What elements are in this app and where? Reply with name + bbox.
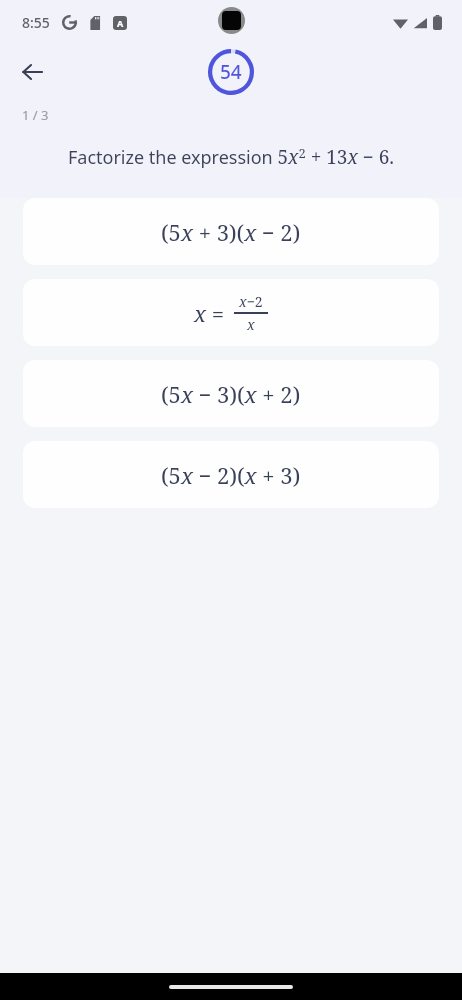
staticText: 1 / 3 bbox=[22, 106, 49, 124]
staticText: (5x − 2)(x + 3) bbox=[161, 460, 301, 490]
staticText: x = bbox=[194, 298, 230, 328]
button[interactable]: (5x − 2)(x + 3) bbox=[23, 441, 439, 508]
staticText: 54 bbox=[220, 59, 242, 85]
staticText: (5x − 3)(x + 2) bbox=[161, 379, 301, 409]
staticText: 8:55 bbox=[22, 13, 50, 32]
button[interactable]: (5x + 3)(x − 2) bbox=[23, 198, 439, 265]
staticText: x−2 bbox=[239, 292, 263, 311]
staticText: Factorize the expression 5x2 + 13x − 6. bbox=[50, 144, 412, 170]
button[interactable]: Back bbox=[10, 50, 54, 94]
staticText: x bbox=[247, 315, 255, 334]
staticText: A bbox=[117, 17, 124, 29]
button[interactable]: x = bbox=[23, 279, 439, 346]
staticText: (5x + 3)(x − 2) bbox=[161, 217, 301, 247]
button[interactable]: (5x − 3)(x + 2) bbox=[23, 360, 439, 427]
